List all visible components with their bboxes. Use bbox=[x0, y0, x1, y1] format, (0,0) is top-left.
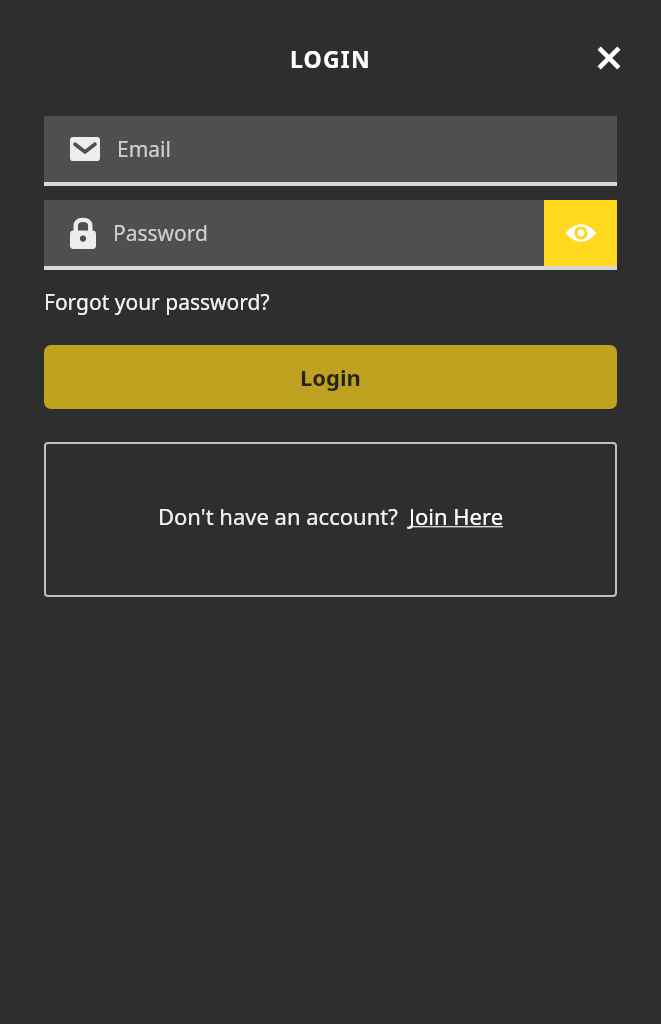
button[interactable]: Password bbox=[44, 200, 544, 266]
staticText: Don't have an account? bbox=[158, 501, 398, 531]
button[interactable]: Close bbox=[585, 34, 633, 82]
staticText: Password bbox=[113, 219, 208, 248]
staticText: Login bbox=[300, 362, 361, 392]
button[interactable]: Don't have an account? bbox=[44, 442, 617, 597]
button[interactable]: Email bbox=[44, 116, 617, 186]
button[interactable]: Login bbox=[44, 345, 617, 409]
button[interactable]: Forgot your password? bbox=[44, 288, 270, 317]
staticText: Email bbox=[117, 135, 171, 164]
staticText: Join Here bbox=[409, 501, 504, 531]
button[interactable]: Show password bbox=[544, 200, 617, 266]
staticText: Forgot your password? bbox=[44, 288, 270, 317]
staticText: LOGIN bbox=[290, 43, 371, 74]
